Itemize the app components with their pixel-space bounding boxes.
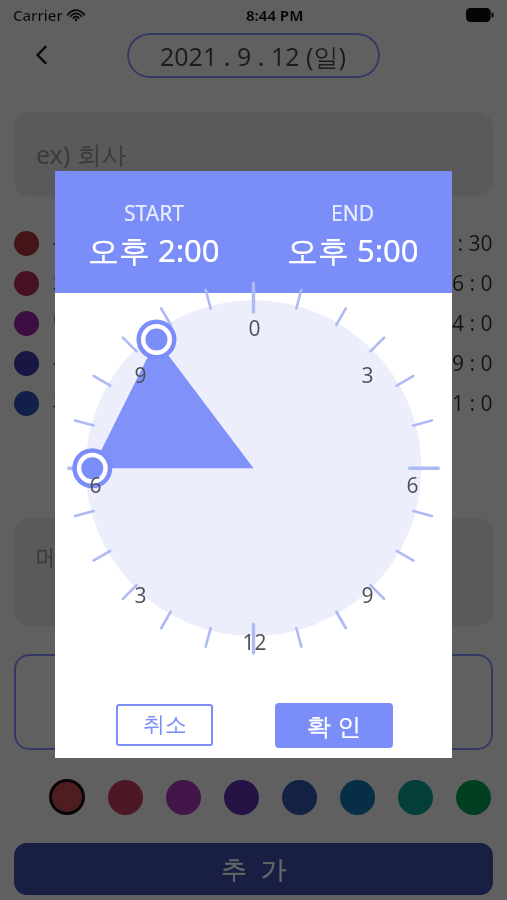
button[interactable] bbox=[154, 772, 212, 822]
button[interactable]: 근무 bbox=[14, 224, 493, 262]
staticText: END bbox=[331, 199, 374, 228]
staticText: 9 bbox=[361, 581, 374, 610]
button[interactable] bbox=[328, 772, 386, 822]
button[interactable] bbox=[270, 772, 328, 822]
staticText: 휴식 bbox=[52, 390, 94, 416]
button[interactable] bbox=[38, 772, 96, 822]
staticText: 6 bbox=[406, 471, 419, 500]
staticText: 회의 bbox=[52, 270, 94, 296]
staticText: 3 bbox=[134, 581, 147, 610]
button[interactable]: 추 가 bbox=[14, 843, 493, 895]
staticText: 12 bbox=[242, 628, 267, 657]
button[interactable]: START bbox=[55, 171, 253, 293]
button[interactable] bbox=[14, 654, 493, 750]
staticText: 9 : 30 bbox=[440, 229, 493, 258]
staticText: 14 : 0 bbox=[440, 309, 493, 338]
button[interactable]: Back bbox=[22, 35, 62, 75]
staticText: 3 bbox=[361, 361, 374, 390]
staticText: 확 인 bbox=[307, 709, 362, 742]
staticText: START bbox=[124, 199, 184, 228]
staticText: 9 bbox=[134, 361, 147, 390]
staticText: 0 bbox=[248, 314, 261, 343]
staticText: 운동 bbox=[52, 350, 94, 376]
staticText: 8:44 PM bbox=[246, 5, 304, 25]
button[interactable]: 휴식 bbox=[14, 384, 493, 422]
staticText: Carrier bbox=[13, 5, 63, 25]
staticText: ex) 회사 bbox=[36, 137, 127, 171]
button[interactable]: END bbox=[253, 171, 452, 293]
button[interactable] bbox=[212, 772, 270, 822]
staticText: 메모 bbox=[36, 542, 86, 573]
staticText: 근무 bbox=[52, 230, 94, 256]
button[interactable]: 발표 bbox=[14, 304, 493, 342]
button[interactable]: 취소 bbox=[116, 704, 213, 746]
staticText: 취소 bbox=[143, 711, 187, 739]
staticText: 추 가 bbox=[221, 851, 287, 887]
staticText: 19 : 0 bbox=[440, 349, 493, 378]
button[interactable]: ex) 회사 bbox=[14, 112, 493, 196]
staticText: 발표 bbox=[52, 310, 94, 336]
button[interactable] bbox=[444, 772, 502, 822]
staticText: 2021 . 9 . 12 (일) bbox=[160, 39, 347, 73]
button[interactable] bbox=[386, 772, 444, 822]
button[interactable]: 회의 bbox=[14, 264, 493, 302]
button[interactable]: 확 인 bbox=[275, 703, 393, 748]
staticText: 16 : 0 bbox=[440, 269, 493, 298]
staticText: 오후 5:00 bbox=[287, 229, 419, 271]
button[interactable]: 운동 bbox=[14, 344, 493, 382]
button[interactable] bbox=[96, 772, 154, 822]
button[interactable]: 2021 . 9 . 12 (일) bbox=[127, 33, 380, 78]
button[interactable]: 메모 bbox=[14, 518, 493, 626]
staticText: 오후 2:00 bbox=[88, 229, 220, 271]
staticText: 21 : 0 bbox=[440, 389, 493, 418]
staticText: 6 bbox=[89, 471, 102, 500]
